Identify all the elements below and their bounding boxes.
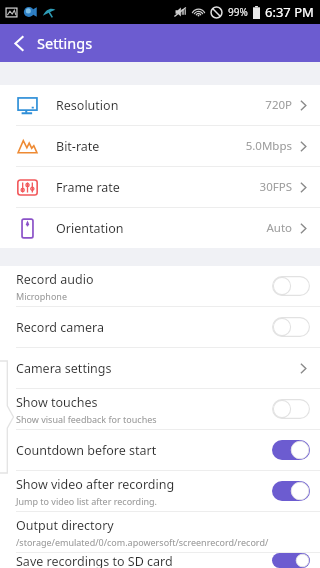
staticText: Output directory [16, 517, 114, 534]
button[interactable]: Resolution [0, 85, 320, 125]
staticText: Settings [37, 33, 93, 53]
staticText: 30FPS [259, 179, 292, 195]
button[interactable]: Save recordings to SD card [0, 553, 320, 568]
staticText: Show touches [16, 394, 98, 411]
staticText: Record audio [16, 271, 94, 288]
staticText: Camera settings [16, 360, 297, 377]
staticText: Show video after recording [16, 476, 175, 493]
staticText: Auto [266, 220, 292, 236]
button[interactable]: Toggle on [272, 481, 310, 501]
button[interactable]: Toggle off [272, 399, 310, 419]
button[interactable]: Toggle off [272, 276, 310, 296]
button[interactable]: Orientation [0, 208, 320, 248]
staticText: Jump to video list after recording. [16, 495, 157, 507]
staticText: 720P [265, 97, 292, 113]
staticText: 5.0Mbps [245, 138, 292, 154]
staticText: /storage/emulated/0/com.apowersoft/scree… [16, 536, 269, 548]
button[interactable]: Bit-rate [0, 126, 320, 166]
button[interactable]: Show touches [0, 389, 320, 429]
staticText: 99% [228, 5, 248, 19]
button[interactable]: Record audio [0, 266, 320, 306]
button[interactable]: Frame rate [0, 167, 320, 207]
button[interactable]: Countdown before start [0, 430, 320, 470]
staticText: Resolution [56, 97, 265, 114]
button[interactable]: Output directory [0, 512, 320, 552]
button[interactable]: Record camera [0, 307, 320, 347]
staticText: Countdown before start [16, 442, 157, 459]
button[interactable]: Toggle off [272, 317, 310, 337]
staticText: Frame rate [56, 179, 259, 196]
staticText: Save recordings to SD card [16, 553, 173, 568]
button[interactable]: Back [0, 24, 38, 62]
staticText: 6:37 PM [265, 3, 314, 21]
button[interactable]: Show video after recording [0, 471, 320, 511]
staticText: Orientation [56, 220, 266, 237]
staticText: Show visual feedback for touches [16, 413, 157, 425]
staticText: Microphone [16, 290, 67, 302]
button[interactable]: Toggle on [272, 440, 310, 460]
staticText: Bit-rate [56, 138, 245, 155]
button[interactable]: Camera settings [0, 348, 320, 388]
staticText: Record camera [16, 319, 104, 336]
button[interactable]: Toggle on [272, 553, 310, 568]
